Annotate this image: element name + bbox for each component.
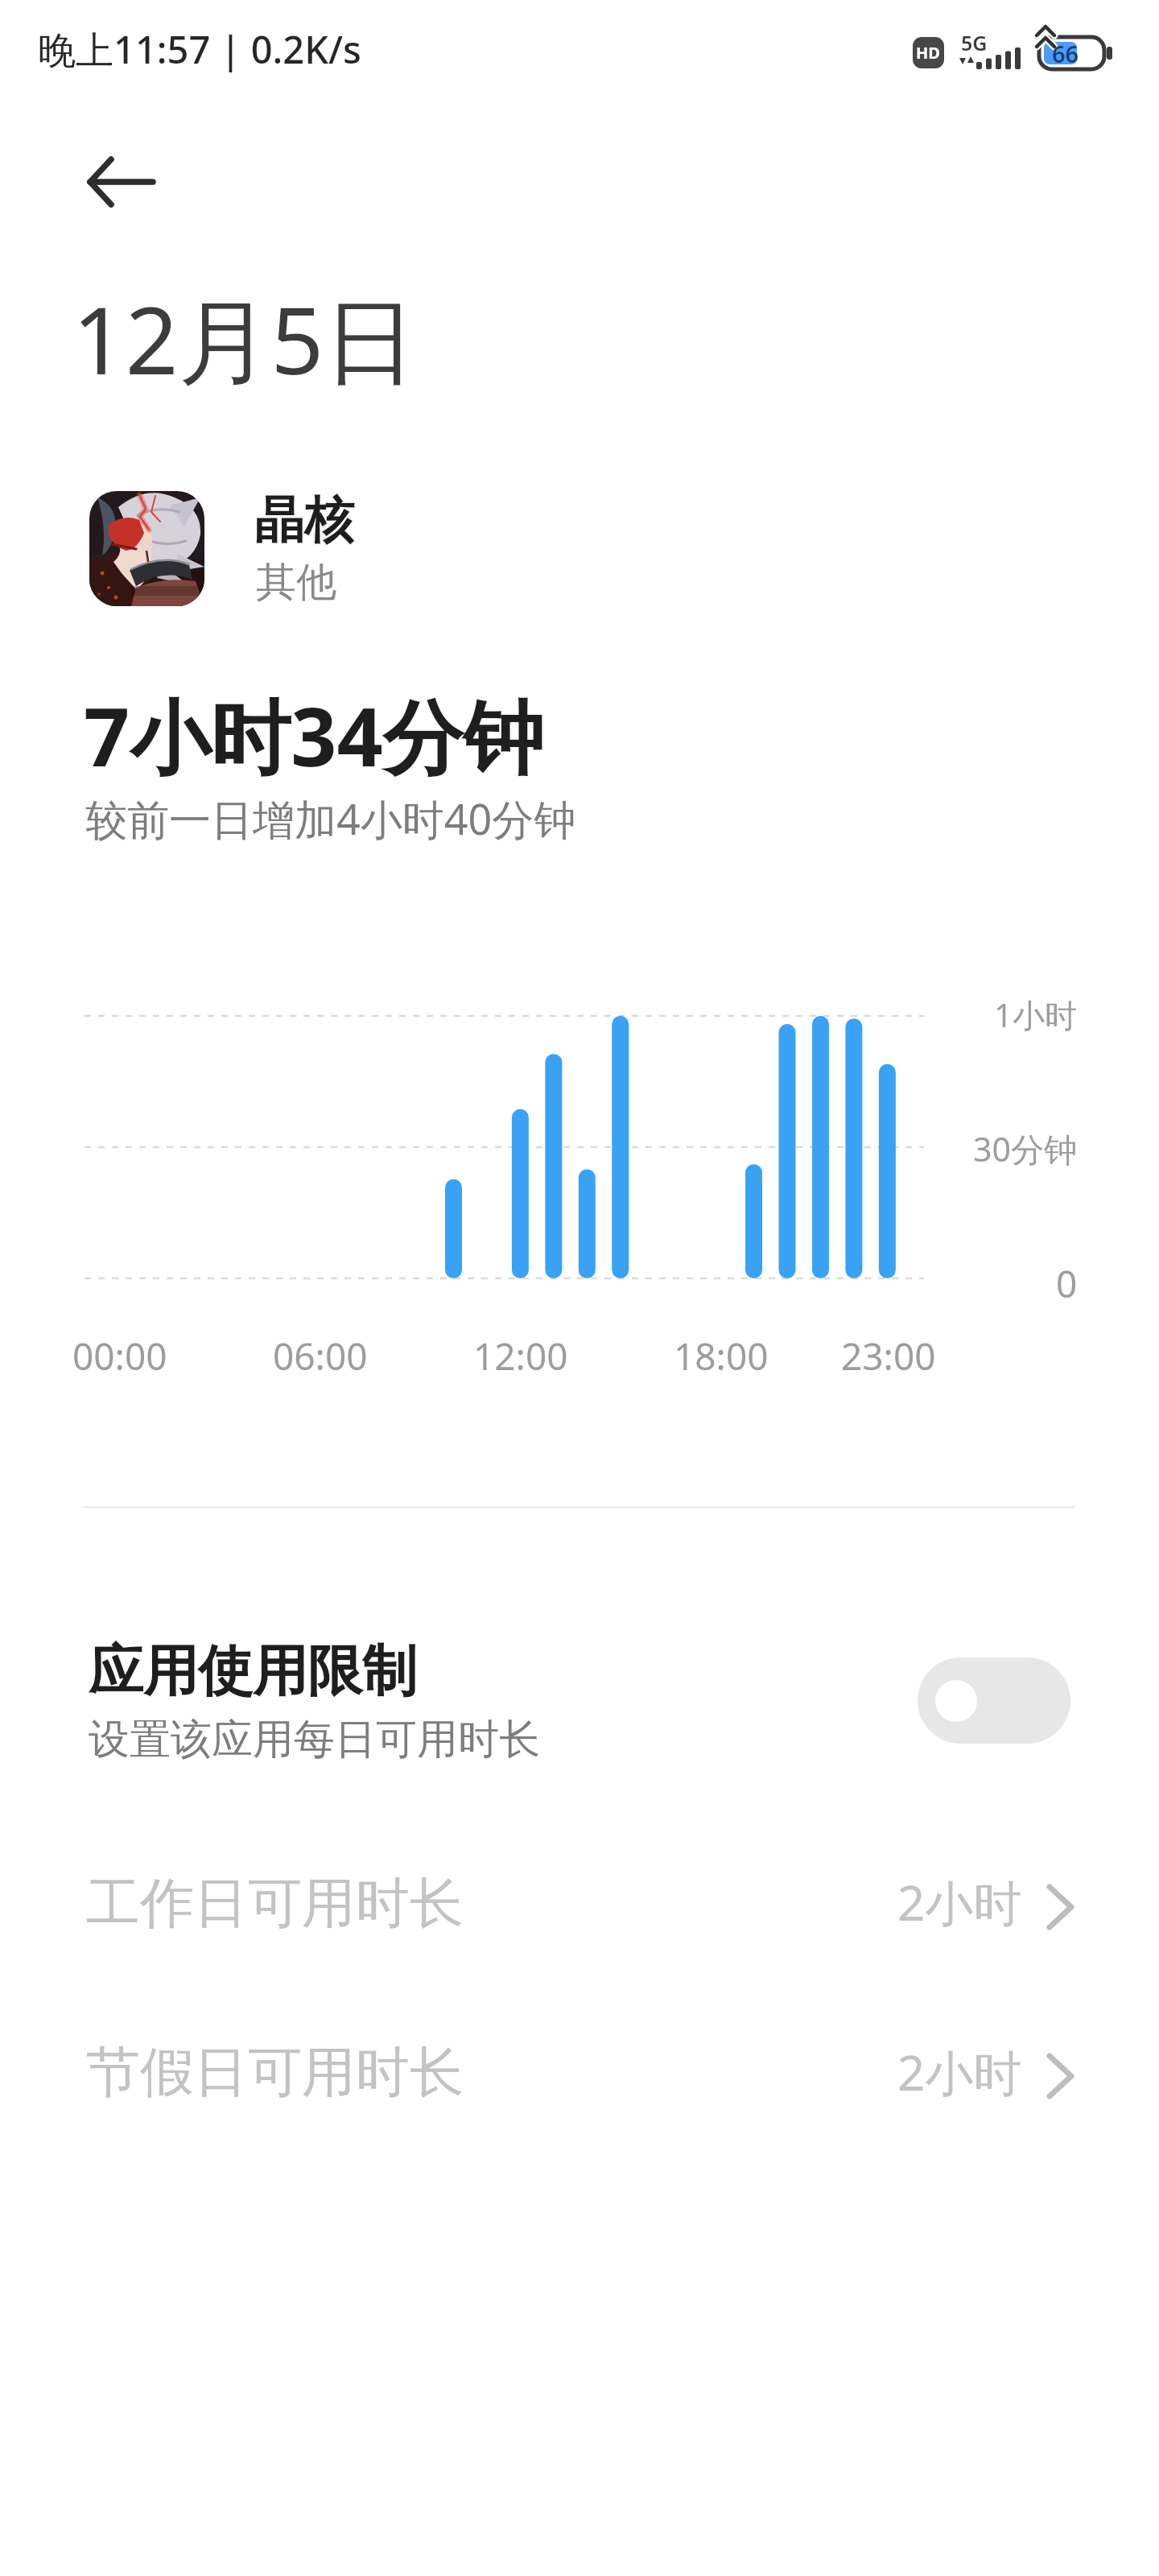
staticText: 晚上11:57 | 0.2K/s — [38, 23, 361, 75]
staticText: 1小时 — [994, 993, 1077, 1037]
staticText: 18:00 — [674, 1331, 769, 1381]
staticText: 30分钟 — [973, 1126, 1077, 1171]
staticText: 00:00 — [72, 1331, 167, 1381]
staticText: 其他 — [256, 557, 336, 608]
staticText: 0 — [1056, 1258, 1078, 1309]
staticText: 7小时34分钟 — [84, 680, 544, 791]
staticText: 2小时 — [897, 2039, 1022, 2105]
staticText: 工作日可用时长 — [86, 1869, 464, 1937]
staticText: 节假日可用时长 — [86, 2038, 464, 2106]
staticText: 5G — [961, 29, 988, 56]
staticText: 66 — [1052, 38, 1079, 69]
staticText: 2小时 — [897, 1869, 1022, 1935]
staticText: 应用使用限制 — [89, 1637, 417, 1707]
button[interactable] — [918, 1657, 1070, 1744]
button[interactable] — [0, 1835, 1159, 1976]
staticText: 12:00 — [473, 1331, 568, 1381]
staticText: 较前一日增加4小时40分钟 — [85, 790, 576, 847]
button[interactable] — [0, 2004, 1159, 2145]
staticText: 23:00 — [841, 1331, 936, 1381]
staticText: 晶核 — [254, 489, 354, 551]
staticText: 06:00 — [273, 1331, 368, 1381]
staticText: 设置该应用每日可用时长 — [89, 1714, 540, 1765]
staticText: 12月5日 — [72, 275, 417, 402]
button[interactable] — [64, 134, 177, 230]
staticText: HD — [916, 42, 940, 64]
